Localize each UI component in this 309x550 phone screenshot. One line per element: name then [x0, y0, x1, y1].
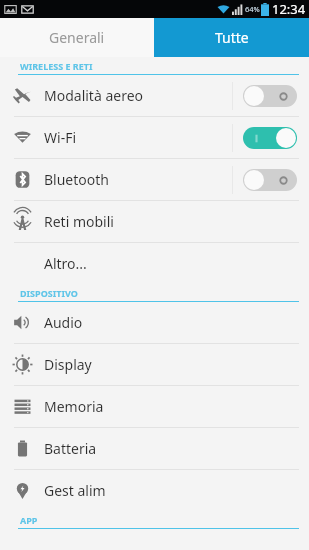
- staticText: DISPOSITIVO: [20, 287, 78, 299]
- button[interactable]: On: [243, 127, 297, 149]
- staticText: Generali: [49, 28, 105, 47]
- staticText: Memoria: [44, 397, 104, 416]
- button[interactable]: Batteria: [0, 428, 309, 469]
- button[interactable]: Audio: [0, 302, 309, 343]
- button[interactable]: Generali: [0, 18, 154, 57]
- button[interactable]: Reti mobili: [0, 201, 309, 242]
- button[interactable]: Off: [243, 169, 297, 191]
- button[interactable]: Tutte: [154, 18, 309, 57]
- staticText: APP: [20, 514, 38, 526]
- staticText: Tutte: [215, 28, 249, 47]
- staticText: Display: [44, 355, 92, 374]
- staticText: Reti mobili: [44, 212, 114, 231]
- staticText: Wi-Fi: [44, 128, 77, 147]
- button[interactable]: Altro...: [0, 243, 309, 284]
- button[interactable]: Memoria: [0, 386, 309, 427]
- button[interactable]: Wi-Fi: [0, 117, 309, 158]
- button[interactable]: Display: [0, 344, 309, 385]
- staticText: Modalità aereo: [44, 86, 144, 105]
- staticText: Bluetooth: [44, 170, 109, 189]
- staticText: 12:34: [272, 0, 306, 18]
- button[interactable]: Off: [243, 85, 297, 107]
- staticText: Audio: [44, 313, 83, 332]
- staticText: WIRELESS E RETI: [20, 60, 93, 72]
- button[interactable]: Modalità aereo: [0, 75, 309, 116]
- button[interactable]: Bluetooth: [0, 159, 309, 200]
- staticText: Altro...: [44, 254, 87, 273]
- staticText: 64%: [245, 4, 260, 14]
- button[interactable]: Gest alim: [0, 470, 309, 511]
- staticText: Gest alim: [44, 481, 106, 500]
- staticText: Batteria: [44, 439, 97, 458]
